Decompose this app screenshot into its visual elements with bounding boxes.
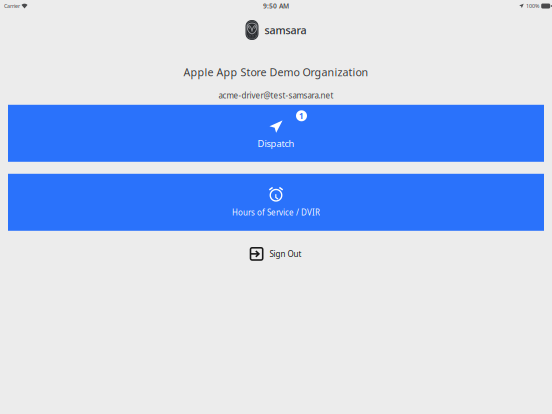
button[interactable]: Sign Out (244, 242, 307, 266)
staticText: Dispatch (257, 137, 294, 149)
staticText: 100% (526, 2, 539, 10)
staticText: samsara (264, 23, 306, 37)
button[interactable]: Dispatch (8, 105, 544, 162)
staticText: 9:50 AM (263, 2, 289, 10)
staticText: acme-driver@test-samsara.net (218, 90, 333, 101)
staticText: Sign Out (269, 249, 301, 259)
staticText: 1 (299, 110, 304, 121)
staticText: Apple App Store Demo Organization (183, 65, 368, 79)
staticText: Hours of Service / DVIR (232, 207, 320, 218)
staticText: Carrier (4, 2, 20, 10)
button[interactable]: Hours of Service / DVIR (8, 174, 544, 231)
